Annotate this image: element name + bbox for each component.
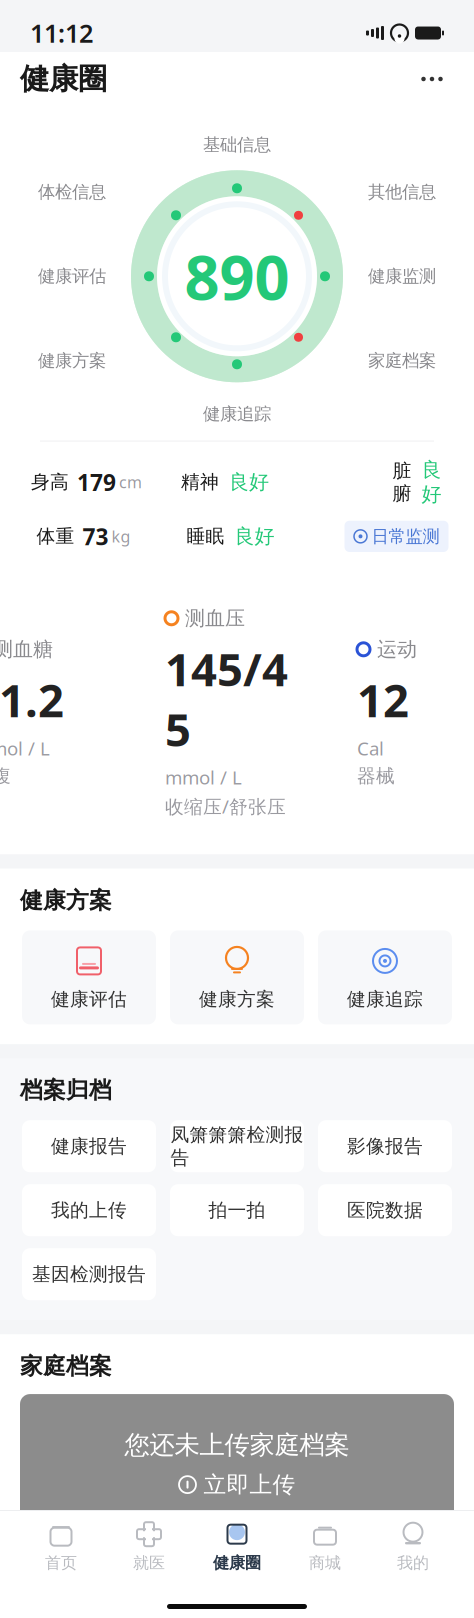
staticText: 良好	[234, 524, 274, 549]
staticText: 健康方案	[38, 350, 106, 371]
staticText: mmol / L	[0, 736, 50, 761]
staticText: 健康方案	[199, 988, 275, 1011]
staticText: 11:12	[30, 16, 93, 50]
staticText: 医院数据	[347, 1199, 423, 1222]
staticText: 睡眠	[186, 525, 224, 548]
staticText: 您还未上传家庭档案	[124, 1430, 349, 1461]
staticText: 精神	[181, 471, 219, 494]
button[interactable]: 我的上传	[22, 1184, 156, 1236]
button[interactable]: 就医	[105, 1519, 193, 1575]
staticText: 就医	[133, 1553, 165, 1573]
staticText: mmol / L	[165, 765, 242, 790]
staticText: 测血压	[185, 606, 245, 631]
staticText: 运动	[377, 637, 417, 662]
button[interactable]: 健康方案	[170, 930, 304, 1024]
button[interactable]: 日常监测	[344, 521, 448, 552]
button[interactable]: 您还未上传家庭档案	[20, 1394, 454, 1534]
staticText: Cal	[357, 736, 384, 761]
staticText: 拍一拍	[208, 1199, 265, 1222]
staticText: 身高	[31, 471, 69, 494]
staticText: 脏腑	[392, 459, 411, 505]
staticText: 家庭档案	[368, 350, 436, 371]
button[interactable]: 凤箫箫箫检测报告	[170, 1120, 304, 1172]
staticText: 空腹	[0, 765, 11, 787]
staticText: 健康圈	[20, 61, 107, 97]
staticText: 健康圈	[213, 1553, 261, 1573]
button[interactable]: 健康追踪	[318, 930, 452, 1024]
staticText: 基础信息	[203, 134, 271, 155]
staticText: 73	[82, 521, 108, 551]
button[interactable]: 商城	[281, 1519, 369, 1575]
button[interactable]: 我的	[369, 1519, 457, 1575]
staticText: 体重	[36, 525, 74, 548]
staticText: 体检信息	[38, 181, 106, 203]
staticText: 日常监测	[371, 526, 439, 547]
staticText: 测血糖	[0, 637, 53, 662]
staticText: 179	[77, 467, 116, 497]
staticText: 健康方案	[20, 886, 112, 914]
staticText: 12	[357, 670, 409, 730]
staticText: cm	[119, 471, 142, 493]
staticText: 基因检测报告	[32, 1263, 146, 1286]
button[interactable]: 基因检测报告	[22, 1248, 156, 1300]
button[interactable]: 医院数据	[318, 1184, 452, 1236]
staticText: 良好	[421, 458, 441, 507]
staticText: 良好	[229, 470, 269, 494]
staticText: 健康追踪	[203, 403, 271, 425]
staticText: 145/45	[165, 639, 288, 759]
button[interactable]: 健康圈	[193, 1519, 281, 1575]
button[interactable]: 首页	[17, 1519, 105, 1575]
staticText: 家庭档案	[20, 1352, 112, 1380]
button[interactable]: 拍一拍	[170, 1184, 304, 1236]
staticText: 健康评估	[51, 988, 127, 1011]
staticText: 收缩压/舒张压	[165, 794, 286, 819]
staticText: 首页	[45, 1553, 77, 1573]
staticText: 我的上传	[51, 1199, 127, 1222]
button[interactable]: 影像报告	[318, 1120, 452, 1172]
staticText: 立即上传	[203, 1471, 295, 1498]
staticText: 890	[184, 236, 289, 317]
staticText: 健康追踪	[347, 988, 423, 1011]
staticText: 凤箫箫箫检测报告	[170, 1123, 303, 1169]
button[interactable]: 健康评估	[22, 930, 156, 1024]
staticText: 健康评估	[38, 266, 106, 287]
button[interactable]: 运动	[339, 621, 474, 803]
staticText: 11.2	[0, 670, 64, 730]
button[interactable]: 测血压	[147, 590, 325, 834]
staticText: 器械	[357, 765, 395, 787]
staticText: 影像报告	[347, 1135, 423, 1158]
staticText: 健康报告	[51, 1135, 127, 1158]
staticText: 商城	[309, 1553, 341, 1573]
button[interactable]: 健康报告	[22, 1120, 156, 1172]
button[interactable]: 测血糖	[0, 621, 133, 803]
staticText: 其他信息	[368, 181, 436, 203]
staticText: kg	[111, 526, 130, 547]
button[interactable]: 更多	[410, 61, 454, 97]
staticText: 我的	[397, 1553, 429, 1573]
staticText: 健康监测	[368, 266, 436, 287]
staticText: 档案归档	[20, 1076, 112, 1104]
